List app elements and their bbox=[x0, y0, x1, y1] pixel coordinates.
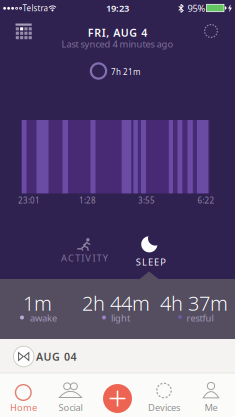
button[interactable]: Social bbox=[48, 375, 92, 417]
staticText: restful bbox=[186, 312, 213, 324]
button[interactable] bbox=[196, 16, 226, 46]
staticText: Social bbox=[58, 401, 82, 414]
staticText: 1:28 bbox=[79, 195, 96, 206]
staticText: Home bbox=[10, 401, 37, 414]
staticText: 23:01 bbox=[18, 195, 40, 206]
staticText: 1m bbox=[23, 290, 52, 316]
staticText: 2h 44m bbox=[82, 290, 150, 316]
staticText: ACTIVITY bbox=[61, 252, 108, 264]
staticText: 7h 21m bbox=[111, 66, 140, 77]
staticText: 4h 37m bbox=[160, 290, 228, 316]
button[interactable]: AUG 04 bbox=[0, 339, 235, 373]
staticText: FRI, AUG 4 bbox=[88, 25, 147, 40]
staticText: light bbox=[111, 312, 130, 324]
button[interactable]: Devices bbox=[142, 375, 186, 417]
staticText: SLEEP bbox=[136, 256, 166, 268]
button[interactable]: SLEEP bbox=[100, 220, 200, 272]
button[interactable]: Home bbox=[1, 375, 45, 417]
staticText: Telstra bbox=[22, 3, 47, 13]
staticText: 19:23 bbox=[106, 2, 129, 14]
staticText: Last synced 4 minutes ago bbox=[61, 38, 173, 50]
staticText: 6:22 bbox=[197, 195, 214, 206]
staticText: 95% bbox=[187, 2, 205, 14]
staticText: AUG 04 bbox=[36, 349, 76, 364]
staticText: 3:55 bbox=[138, 195, 155, 206]
staticText: Me bbox=[204, 401, 217, 414]
button[interactable]: ACTIVITY bbox=[34, 220, 134, 272]
button[interactable]: Me bbox=[189, 375, 233, 417]
staticText: awake bbox=[30, 312, 57, 324]
staticText: Devices bbox=[148, 401, 180, 414]
button[interactable] bbox=[6, 15, 40, 49]
button[interactable] bbox=[103, 384, 132, 413]
